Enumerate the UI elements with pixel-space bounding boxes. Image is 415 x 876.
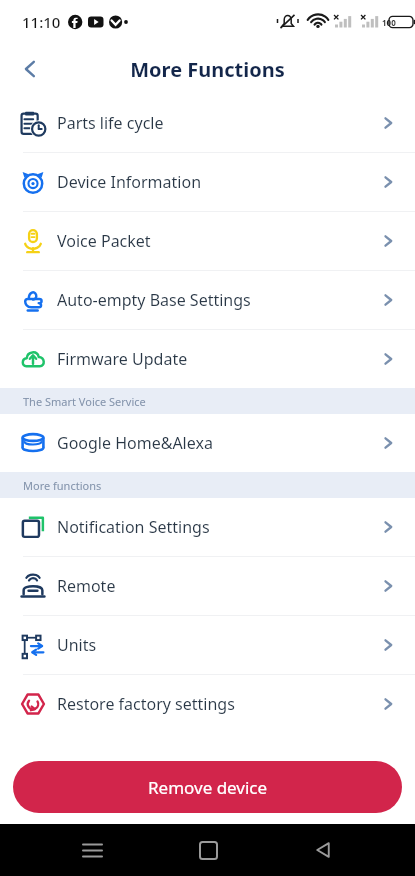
- button[interactable]: Auto-empty Base Settings: [0, 271, 415, 329]
- button[interactable]: Google Home&Alexa: [0, 414, 415, 472]
- button[interactable]: Units: [0, 616, 415, 674]
- staticText: Device Information: [57, 171, 202, 193]
- button[interactable]: Firmware Update: [0, 330, 415, 388]
- staticText: Google Home&Alexa: [57, 432, 213, 454]
- button[interactable]: Back: [300, 827, 346, 873]
- button[interactable]: Parts life cycle: [0, 94, 415, 152]
- button[interactable]: Back: [8, 47, 52, 91]
- staticText: The Smart Voice Service: [23, 394, 146, 409]
- staticText: Units: [57, 634, 97, 656]
- button[interactable]: Notification Settings: [0, 498, 415, 556]
- staticText: More Functions: [130, 56, 285, 83]
- staticText: 11:10: [22, 12, 61, 32]
- staticText: Firmware Update: [57, 348, 188, 370]
- staticText: Notification Settings: [57, 516, 210, 538]
- staticText: Remote: [57, 575, 116, 597]
- button[interactable]: Home: [185, 827, 231, 873]
- staticText: Parts life cycle: [57, 112, 164, 134]
- staticText: Remove device: [148, 776, 268, 799]
- button[interactable]: Remove device: [13, 761, 402, 813]
- staticText: Restore factory settings: [57, 693, 235, 715]
- button[interactable]: Restore factory settings: [0, 675, 415, 733]
- staticText: More functions: [23, 478, 102, 493]
- button[interactable]: Recents: [69, 827, 115, 873]
- staticText: 100: [382, 17, 396, 28]
- button[interactable]: Device Information: [0, 153, 415, 211]
- button[interactable]: Voice Packet: [0, 212, 415, 270]
- staticText: Voice Packet: [57, 230, 151, 252]
- button[interactable]: Remote: [0, 557, 415, 615]
- staticText: Auto-empty Base Settings: [57, 289, 251, 311]
